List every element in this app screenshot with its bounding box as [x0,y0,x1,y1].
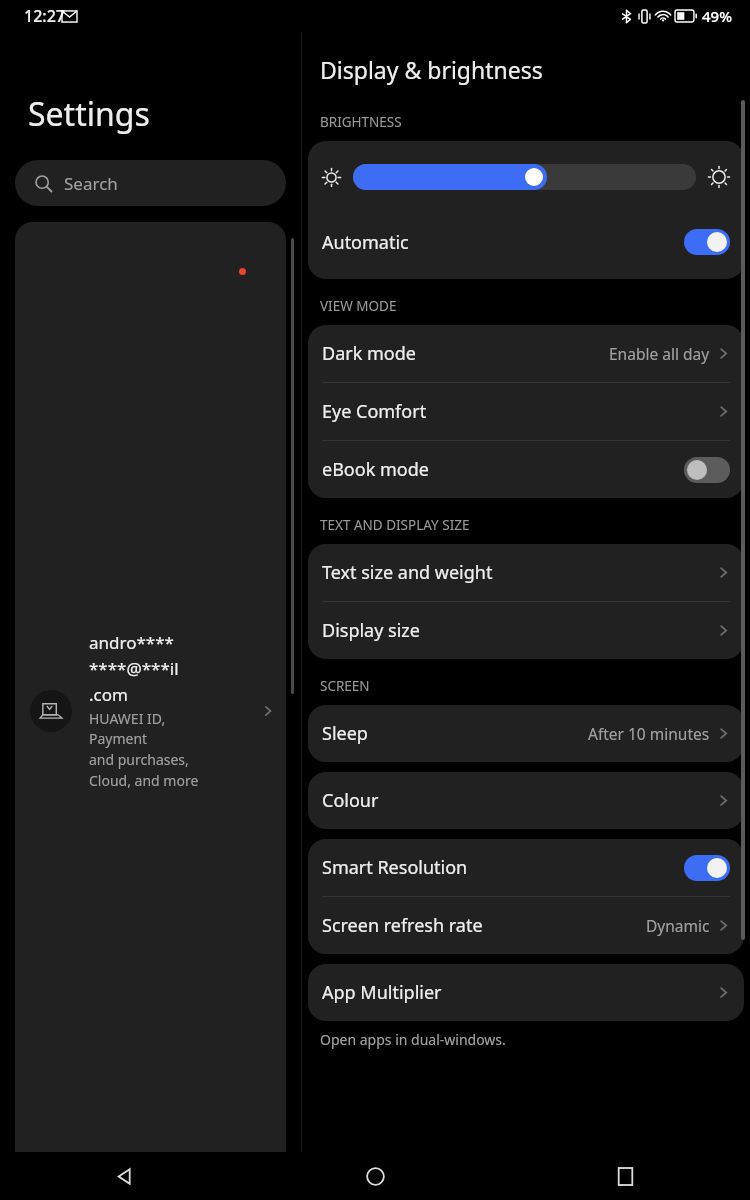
staticText: BRIGHTNESS [320,113,402,131]
staticText: HUAWEI ID, Payment and purchases, Cloud,… [89,709,224,791]
button[interactable]: Recents [500,1152,750,1200]
button[interactable]: eBook mode [308,441,744,498]
staticText: VIEW MODE [320,297,397,315]
button[interactable]: Screen refresh rate [308,897,744,954]
staticText: Search [64,172,118,195]
button[interactable]: Smart Resolution [308,839,744,896]
button[interactable]: Switch on [684,229,730,255]
staticText: Smart Resolution [322,855,684,880]
staticText: Text size and weight [322,560,715,585]
button[interactable]: Display size [308,602,744,659]
staticText: Screen refresh rate [322,913,646,938]
staticText: 12:27 [24,5,65,27]
button[interactable]: Home [250,1152,500,1200]
staticText: Display & brightness [320,54,543,85]
staticText: Sleep [322,721,588,746]
staticText: Open apps in dual-windows. [320,1030,506,1049]
staticText: Eye Comfort [322,399,715,424]
button[interactable]: Text size and weight [308,544,744,601]
button[interactable]: Automatic [308,213,744,271]
button[interactable]: Search [15,160,286,206]
button[interactable]: Dark mode [308,325,744,382]
staticText: App Multiplier [322,980,715,1005]
staticText: eBook mode [322,457,684,482]
staticText: SCREEN [320,677,370,695]
button[interactable]: Switch off [684,457,730,483]
button[interactable]: Sleep [308,705,744,762]
staticText: Dynamic [646,915,710,936]
staticText: Automatic [322,230,684,255]
button[interactable]: Back [0,1152,250,1200]
staticText: Settings [28,92,150,136]
button[interactable]: Colour [308,772,744,829]
staticText: Dark mode [322,341,609,366]
staticText: Colour [322,788,715,813]
staticText: 49% [702,6,732,26]
button[interactable]: App Multiplier [308,964,744,1021]
staticText: andro**** ****@***il .com [89,631,179,706]
staticText: After 10 minutes [588,723,710,744]
button[interactable]: Switch on [684,855,730,881]
button[interactable]: Eye Comfort [308,383,744,440]
staticText: TEXT AND DISPLAY SIZE [320,516,470,534]
button[interactable]: andro**** ****@***il .com [15,222,286,1200]
staticText: Enable all day [609,343,710,364]
staticText: Display size [322,618,715,643]
